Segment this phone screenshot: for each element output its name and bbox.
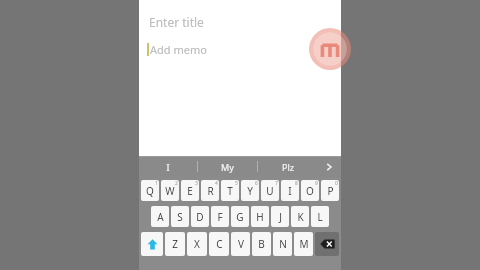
staticText: A — [157, 210, 164, 224]
button[interactable]: N — [273, 232, 292, 256]
staticText: R — [207, 184, 214, 198]
staticText: V — [238, 237, 244, 251]
staticText: E — [187, 184, 193, 198]
staticText: Plz — [282, 161, 294, 173]
staticText: 6 — [255, 180, 258, 187]
staticText: C — [216, 237, 223, 251]
button[interactable]: K — [291, 206, 309, 227]
button[interactable]: I — [139, 156, 197, 177]
staticText: 8 — [295, 180, 298, 187]
button[interactable]: J — [271, 206, 289, 227]
staticText: P — [327, 184, 334, 198]
button[interactable]: Q — [141, 180, 159, 201]
staticText: H — [256, 210, 264, 224]
button[interactable]: More suggestions — [317, 156, 341, 177]
button[interactable]: F — [211, 206, 229, 227]
staticText: Add memo — [150, 42, 207, 57]
button[interactable]: C — [209, 232, 229, 256]
button[interactable]: Add memo — [139, 39, 341, 59]
staticText: Y — [247, 184, 253, 198]
button[interactable]: Y — [241, 180, 259, 201]
staticText: Enter title — [149, 14, 204, 30]
staticText: I — [166, 161, 170, 173]
button[interactable]: M — [294, 232, 313, 256]
staticText: Q — [146, 184, 154, 198]
staticText: 9 — [315, 180, 318, 187]
staticText: N — [279, 237, 287, 251]
button[interactable]: U — [261, 180, 279, 201]
button[interactable]: E — [181, 180, 199, 201]
button[interactable]: R — [201, 180, 219, 201]
button[interactable]: Z — [165, 232, 185, 256]
staticText: D — [196, 210, 204, 224]
button[interactable]: L — [311, 206, 329, 227]
staticText: 4 — [215, 180, 218, 187]
button[interactable]: Shift — [141, 232, 163, 256]
button[interactable]: My — [198, 156, 257, 177]
staticText: Z — [172, 237, 178, 251]
staticText: F — [217, 210, 223, 224]
staticText: X — [194, 237, 200, 251]
button[interactable]: D — [191, 206, 209, 227]
staticText: 1 — [155, 180, 158, 187]
button[interactable]: I — [281, 180, 299, 201]
staticText: G — [236, 210, 244, 224]
staticText: 7 — [275, 180, 278, 187]
button[interactable]: T — [221, 180, 239, 201]
staticText: K — [297, 210, 304, 224]
staticText: O — [306, 184, 314, 198]
button[interactable]: P — [321, 180, 339, 201]
button[interactable]: O — [301, 180, 319, 201]
button[interactable]: W — [161, 180, 179, 201]
button[interactable]: B — [252, 232, 271, 256]
button[interactable]: Backspace — [315, 232, 339, 256]
button[interactable]: X — [187, 232, 207, 256]
button[interactable]: Plz — [258, 156, 317, 177]
button[interactable]: H — [251, 206, 269, 227]
button[interactable]: G — [231, 206, 249, 227]
staticText: J — [279, 210, 282, 224]
button[interactable]: V — [231, 232, 250, 256]
staticText: S — [177, 210, 183, 224]
staticText: U — [266, 184, 274, 198]
staticText: W — [165, 184, 175, 198]
staticText: M — [299, 237, 309, 251]
staticText: L — [317, 210, 323, 224]
button[interactable]: S — [171, 206, 189, 227]
staticText: B — [258, 237, 265, 251]
staticText: T — [227, 184, 233, 198]
staticText: 2 — [175, 180, 178, 187]
staticText: 0 — [335, 180, 338, 187]
button[interactable]: Enter title — [139, 11, 341, 33]
button[interactable]: A — [151, 206, 169, 227]
staticText: I — [288, 184, 292, 198]
staticText: My — [221, 161, 234, 173]
staticText: 3 — [195, 180, 198, 187]
staticText: 5 — [235, 180, 238, 187]
